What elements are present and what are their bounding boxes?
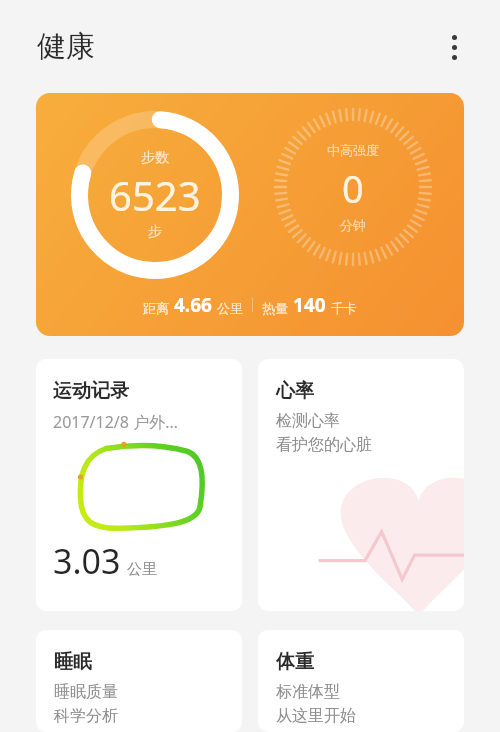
staticText: 体重 bbox=[276, 650, 314, 674]
staticText: 140 bbox=[293, 292, 326, 318]
staticText: 热量 bbox=[262, 300, 288, 316]
button[interactable]: More options bbox=[436, 29, 472, 65]
staticText: 0 bbox=[342, 162, 364, 214]
staticText: 2017/12/8 户外… bbox=[53, 411, 178, 433]
button[interactable]: 心率 bbox=[258, 359, 464, 611]
staticText: 睡眠 bbox=[54, 650, 92, 674]
staticText: 心率 bbox=[276, 379, 314, 403]
staticText: 6523 bbox=[109, 168, 201, 222]
staticText: 中高强度 bbox=[327, 142, 379, 158]
staticText: 标准体型 bbox=[276, 682, 340, 702]
staticText: 分钟 bbox=[340, 217, 366, 233]
staticText: 运动记录 bbox=[53, 379, 129, 403]
staticText: 健康 bbox=[37, 28, 95, 65]
button[interactable]: 睡眠 bbox=[36, 630, 242, 732]
staticText: 公里 bbox=[217, 300, 243, 316]
staticText: 检测心率 bbox=[276, 411, 340, 431]
button[interactable]: 体重 bbox=[258, 630, 464, 732]
button[interactable]: 运动记录 bbox=[36, 359, 242, 611]
staticText: 睡眠质量 bbox=[54, 682, 118, 702]
staticText: 公里 bbox=[127, 560, 157, 579]
staticText: 步 bbox=[148, 223, 162, 241]
button[interactable]: 步数 bbox=[36, 93, 464, 336]
staticText: 从这里开始 bbox=[276, 706, 356, 726]
staticText: 3.03 bbox=[53, 538, 121, 584]
staticText: 科学分析 bbox=[54, 706, 118, 726]
staticText: 步数 bbox=[141, 149, 169, 167]
staticText: 看护您的心脏 bbox=[276, 435, 372, 455]
staticText: 4.66 bbox=[174, 292, 212, 318]
staticText: 千卡 bbox=[331, 300, 357, 316]
staticText: 距离 bbox=[143, 300, 169, 316]
